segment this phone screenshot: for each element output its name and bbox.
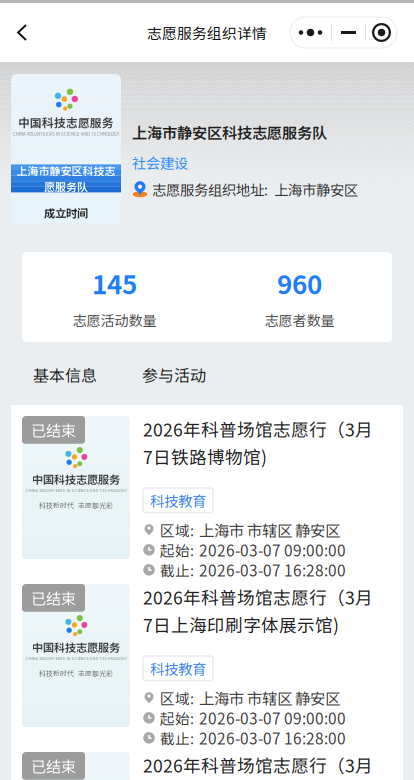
button[interactable]: Close [366,17,397,47]
staticText: 中国科技志愿服务 [32,639,120,655]
staticText: 2026-03-07 09:00:00 [199,539,346,561]
staticText: 7日铁路博物馆) [143,443,267,469]
staticText: 起始: [160,539,194,560]
staticText: 社会建设 [132,152,188,173]
staticText: 2026-03-07 09:00:00 [199,707,346,729]
staticText: 截止: [160,559,194,580]
staticText: 基本信息 [33,363,97,386]
staticText: 截止: [160,727,194,748]
staticText: CHINA VOLUNTEERS IN SCIENCE AND TECHNOLO… [25,487,126,493]
staticText: 中国科技志愿服务 [32,471,120,487]
staticText: 145 [92,264,137,302]
button[interactable]: 中国科技志愿服务 [11,405,403,573]
staticText: 起始: [160,707,194,728]
staticText: CHINA VOLUNTEERS IN SCIENCE AND TECHNOLO… [25,655,126,661]
staticText: 中国科技志愿服务 [18,114,114,130]
staticText: 科技新时代 志愿靓光彩 [39,668,113,678]
staticText: 2026年科普场馆志愿行（3月 [143,416,373,441]
staticText: 960 [277,264,322,302]
staticText: 7日上海印刷字体展示馆) [143,611,339,637]
staticText: CHINA VOLUNTEERS IN SCIENCE AND TECHNOLO… [13,130,119,137]
staticText: 区域: [160,687,194,708]
button[interactable]: 基本信息 [22,353,108,396]
staticText: 2026年科普场馆志愿行（3月 [143,752,373,777]
button[interactable]: 中国科技志愿服务 [11,573,403,741]
staticText: 科技教育 [150,658,206,679]
staticText: 科技新时代 志愿靓光彩 [39,500,113,510]
staticText: 参与活动 [142,363,206,386]
button[interactable]: Back [0,4,44,60]
staticText: 科技教育 [150,490,206,511]
button[interactable]: 中国科技志愿服务 [11,741,403,780]
staticText: 已结束 [31,755,76,777]
staticText: 愿服务队 [44,178,88,194]
staticText: 成立时间 [44,204,88,221]
staticText: 志愿活动数量 [72,310,156,330]
staticText: 志愿服务组织地址: 上海市静安区 [152,179,358,200]
button[interactable]: 参与活动 [131,353,217,396]
staticText: 上海市 市辖区 静安区 [199,687,340,709]
staticText: 志愿服务组织详情 [147,22,267,43]
staticText: 2026-03-07 16:28:00 [199,727,346,749]
staticText: 2026-03-07 16:28:00 [199,559,346,581]
staticText: 志愿者数量 [264,310,334,330]
staticText: 区域: [160,519,194,540]
staticText: 已结束 [31,419,76,441]
staticText: 已结束 [31,587,76,609]
staticText: 上海市 市辖区 静安区 [199,519,340,541]
button[interactable]: Minimize [332,17,365,47]
staticText: 上海市静安区科技志愿服务队 [132,121,327,143]
staticText: 上海市静安区科技志 [16,162,115,178]
button[interactable]: More [290,17,331,47]
staticText: 2026年科普场馆志愿行（3月 [143,584,373,609]
